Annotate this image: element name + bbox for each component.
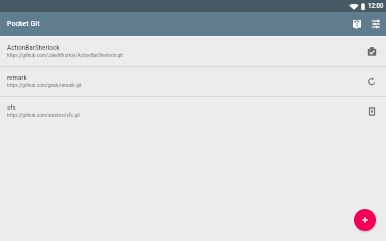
button[interactable]: Repository status <box>363 97 381 126</box>
staticText: https://github.com/JakeWharton/ActionBar… <box>7 52 123 58</box>
staticText: Pocket Git <box>7 19 40 28</box>
button[interactable]: Repository status <box>363 37 381 66</box>
staticText: 12:00 <box>368 2 384 10</box>
button[interactable]: sfs <box>0 97 386 126</box>
button[interactable]: remark <box>0 67 386 96</box>
button[interactable]: Add repository <box>354 209 376 231</box>
staticText: sfs <box>7 103 16 111</box>
staticText: https://github.com/arestivo/sfs.git <box>7 112 80 118</box>
button[interactable]: ActionBarSherlock <box>0 37 386 66</box>
button[interactable]: Help <box>347 12 366 36</box>
staticText: ActionBarSherlock <box>7 43 60 51</box>
staticText: remark <box>7 73 27 81</box>
staticText: https://github.com/gnab/remark.git <box>7 82 82 88</box>
button[interactable]: Settings <box>366 12 386 36</box>
button[interactable]: Repository status <box>363 67 381 96</box>
